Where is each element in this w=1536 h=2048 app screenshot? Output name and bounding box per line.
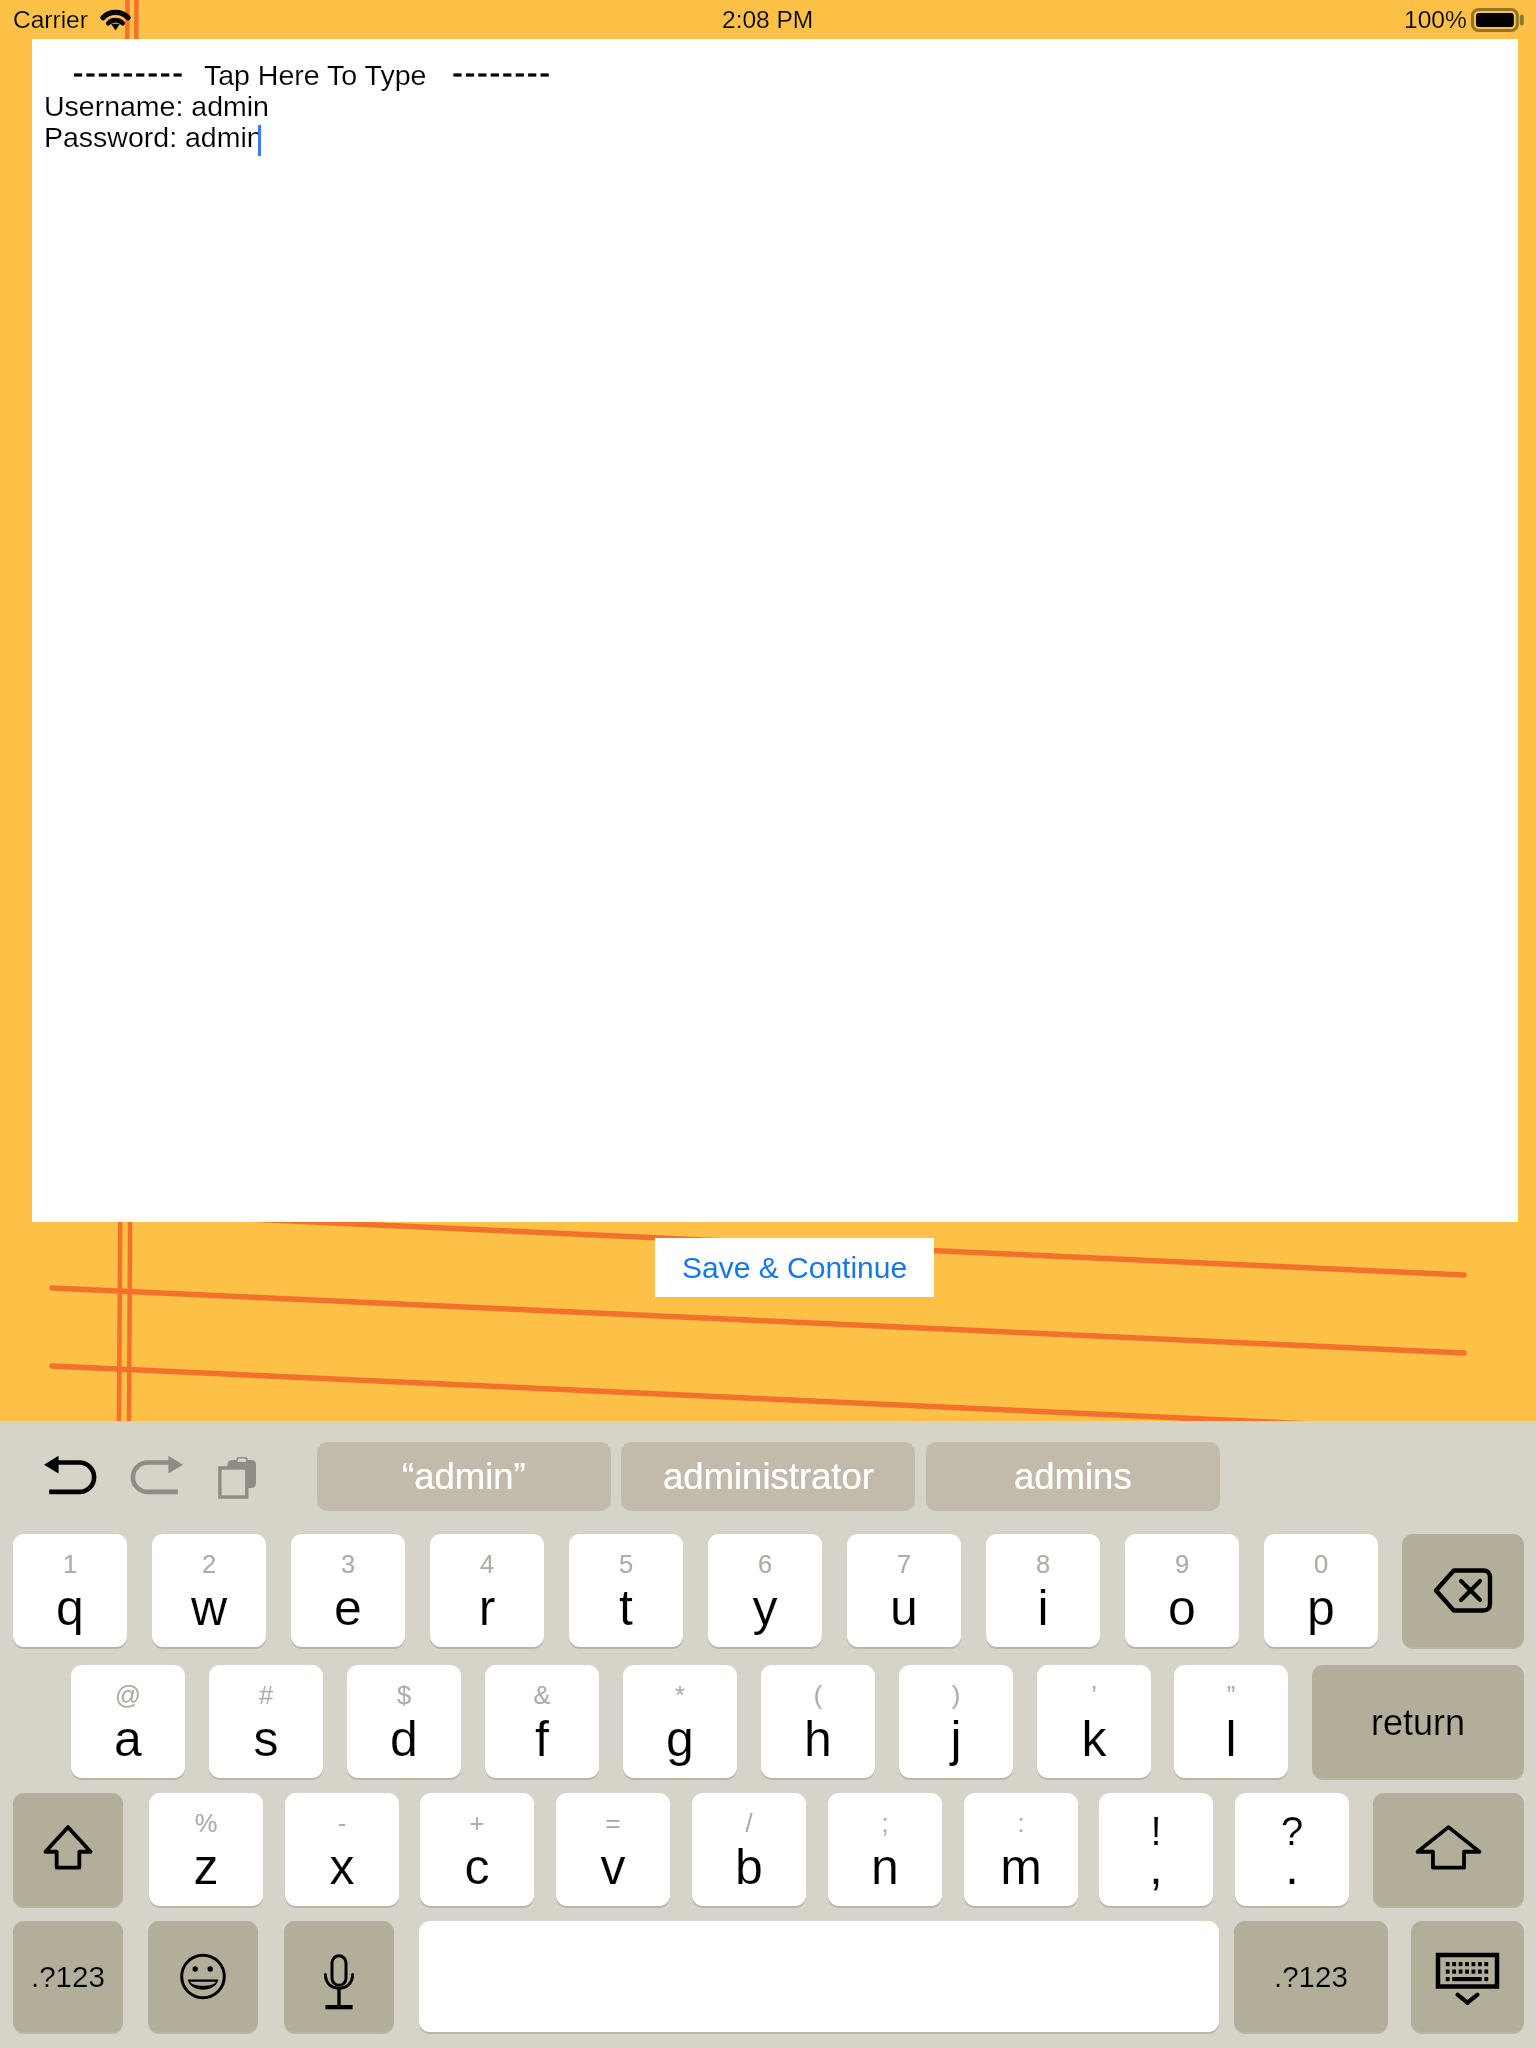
- button[interactable]: admins: [926, 1442, 1220, 1511]
- staticText: ’: [1037, 1681, 1151, 1709]
- button[interactable]: Backspace: [1402, 1534, 1524, 1647]
- button[interactable]: 8: [986, 1534, 1100, 1647]
- button[interactable]: 2: [152, 1534, 266, 1647]
- button[interactable]: &: [485, 1665, 599, 1778]
- staticText: Password: admin: [44, 121, 263, 153]
- staticText: return: [1371, 1702, 1466, 1742]
- staticText: 1: [13, 1550, 127, 1578]
- staticText: :: [964, 1809, 1078, 1837]
- button[interactable]: Shift: [13, 1793, 123, 1906]
- staticText: d: [347, 1711, 461, 1767]
- staticText: a: [71, 1711, 185, 1767]
- staticText: 100%: [1404, 6, 1467, 33]
- staticText: p: [1264, 1580, 1378, 1636]
- staticText: e: [291, 1580, 405, 1636]
- staticText: 2:08 PM: [722, 6, 814, 33]
- staticText: ): [899, 1681, 1013, 1709]
- staticText: x: [285, 1839, 399, 1895]
- button[interactable]: *: [623, 1665, 737, 1778]
- button[interactable]: -: [285, 1793, 399, 1906]
- button[interactable]: ?: [1235, 1793, 1349, 1906]
- staticText: i: [986, 1580, 1100, 1636]
- staticText: Username: admin: [44, 90, 269, 122]
- staticText: administrator: [663, 1456, 874, 1497]
- button[interactable]: Emoji: [148, 1921, 258, 2032]
- staticText: .?123: [31, 1960, 105, 1993]
- button[interactable]: %: [149, 1793, 263, 1906]
- button[interactable]: Hide keyboard: [1411, 1921, 1524, 2032]
- button[interactable]: 9: [1125, 1534, 1239, 1647]
- button[interactable]: return: [1312, 1665, 1524, 1778]
- button[interactable]: $: [347, 1665, 461, 1778]
- button[interactable]: #: [209, 1665, 323, 1778]
- button[interactable]: 0: [1264, 1534, 1378, 1647]
- button[interactable]: Undo: [44, 1451, 96, 1495]
- staticText: .?123: [1274, 1960, 1348, 1993]
- staticText: o: [1125, 1580, 1239, 1636]
- staticText: &: [485, 1681, 599, 1709]
- staticText: 2: [152, 1550, 266, 1578]
- button[interactable]: ’: [1037, 1665, 1151, 1778]
- button[interactable]: Paste: [219, 1457, 256, 1497]
- staticText: .: [1235, 1839, 1349, 1895]
- button[interactable]: @: [71, 1665, 185, 1778]
- button[interactable]: ”: [1174, 1665, 1288, 1778]
- staticText: k: [1037, 1711, 1151, 1767]
- button[interactable]: ): [899, 1665, 1013, 1778]
- button[interactable]: Save & Continue: [655, 1238, 934, 1297]
- button[interactable]: 7: [847, 1534, 961, 1647]
- button[interactable]: 4: [430, 1534, 544, 1647]
- staticText: 8: [986, 1550, 1100, 1578]
- staticText: 5: [569, 1550, 683, 1578]
- staticText: %: [149, 1809, 263, 1837]
- button[interactable]: .?123: [13, 1921, 123, 2032]
- staticText: /: [692, 1809, 806, 1837]
- button[interactable]: =: [556, 1793, 670, 1906]
- staticText: $: [347, 1681, 461, 1709]
- button[interactable]: .?123: [1234, 1921, 1388, 2032]
- staticText: *: [623, 1681, 737, 1709]
- button[interactable]: /: [692, 1793, 806, 1906]
- staticText: -: [285, 1809, 399, 1837]
- button[interactable]: 5: [569, 1534, 683, 1647]
- staticText: u: [847, 1580, 961, 1636]
- staticText: ?: [1235, 1809, 1349, 1854]
- button[interactable]: Tap Here To Type: [32, 39, 1518, 1222]
- staticText: r: [430, 1580, 544, 1636]
- button[interactable]: ;: [828, 1793, 942, 1906]
- staticText: f: [485, 1711, 599, 1767]
- button[interactable]: +: [420, 1793, 534, 1906]
- staticText: 3: [291, 1550, 405, 1578]
- button[interactable]: administrator: [621, 1442, 915, 1511]
- button[interactable]: (: [761, 1665, 875, 1778]
- staticText: s: [209, 1711, 323, 1767]
- staticText: Carrier: [13, 6, 88, 33]
- staticText: t: [569, 1580, 683, 1636]
- staticText: l: [1174, 1711, 1288, 1767]
- staticText: b: [692, 1839, 806, 1895]
- staticText: z: [149, 1839, 263, 1895]
- button[interactable]: !: [1099, 1793, 1213, 1906]
- staticText: @: [71, 1681, 185, 1709]
- staticText: 0: [1264, 1550, 1378, 1578]
- staticText: Save & Continue: [682, 1251, 908, 1285]
- button[interactable]: :: [964, 1793, 1078, 1906]
- button[interactable]: Dictate: [284, 1921, 394, 2032]
- button[interactable]: Shift: [1373, 1793, 1524, 1906]
- staticText: n: [828, 1839, 942, 1895]
- button[interactable]: 3: [291, 1534, 405, 1647]
- staticText: !: [1099, 1809, 1213, 1854]
- button[interactable]: “admin”: [317, 1442, 611, 1511]
- staticText: y: [708, 1580, 822, 1636]
- staticText: c: [420, 1839, 534, 1895]
- staticText: #: [209, 1681, 323, 1709]
- button[interactable]: 1: [13, 1534, 127, 1647]
- button[interactable]: 6: [708, 1534, 822, 1647]
- button[interactable]: Redo: [131, 1451, 183, 1495]
- staticText: ;: [828, 1809, 942, 1837]
- staticText: j: [899, 1711, 1013, 1767]
- staticText: +: [420, 1809, 534, 1837]
- staticText: m: [964, 1839, 1078, 1895]
- staticText: g: [623, 1711, 737, 1767]
